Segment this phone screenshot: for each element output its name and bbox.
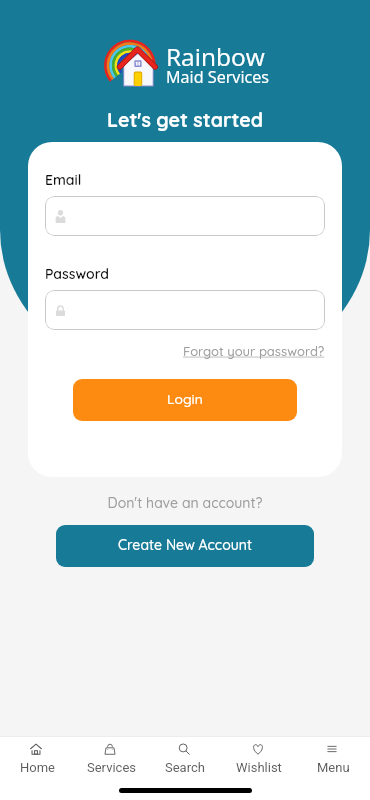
staticText: Email — [45, 171, 82, 189]
button[interactable]: Login — [73, 379, 297, 421]
staticText: Home — [20, 760, 55, 775]
staticText: Search — [165, 760, 205, 775]
button[interactable]: Menu — [296, 738, 370, 777]
staticText: Services — [87, 760, 136, 775]
staticText: Don't have an account? — [0, 494, 370, 512]
staticText: Let's get started — [0, 107, 370, 131]
button[interactable]: Search — [148, 738, 222, 777]
button[interactable]: Wishlist — [222, 738, 296, 777]
staticText: Maid Services — [166, 66, 270, 88]
button[interactable]: Email — [45, 196, 325, 236]
staticText: Password — [45, 265, 109, 283]
staticText: Wishlist — [236, 760, 282, 775]
button[interactable]: Create New Account — [56, 525, 314, 567]
button[interactable]: Services — [74, 738, 148, 777]
staticText: Menu — [317, 760, 350, 775]
staticText: Login — [167, 390, 203, 407]
staticText: Create New Account — [118, 536, 252, 554]
button[interactable]: Forgot your password? — [183, 343, 325, 359]
staticText: Rainbow — [166, 40, 265, 73]
button[interactable]: Password — [45, 290, 325, 330]
button[interactable]: Home — [0, 738, 74, 777]
